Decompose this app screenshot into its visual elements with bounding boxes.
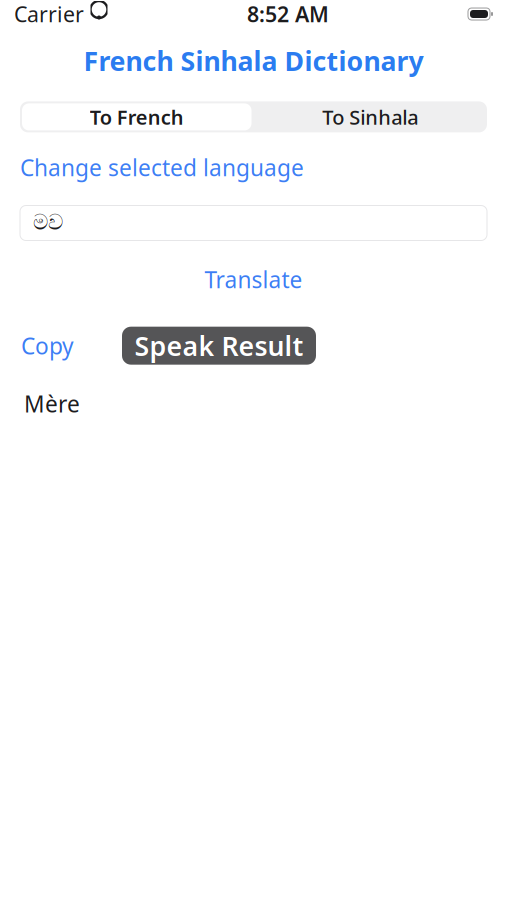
staticText: Carrier [14, 0, 84, 28]
staticText: Change selected language [20, 152, 304, 182]
staticText: To Sinhala [322, 104, 418, 130]
staticText: Mère [24, 389, 80, 419]
staticText: Speak Result [134, 328, 303, 363]
staticText: To French [90, 104, 184, 130]
staticText: Copy [21, 331, 74, 361]
button[interactable]: To Sinhala [253, 101, 487, 132]
button[interactable]: Translate [0, 261, 507, 298]
button[interactable]: To French [20, 101, 253, 132]
staticText: 8:52 AM [247, 0, 329, 28]
button[interactable]: Speak Result [122, 327, 316, 365]
button[interactable]: Copy [17, 325, 78, 367]
staticText: Translate [204, 264, 302, 295]
staticText: මව [33, 213, 63, 233]
staticText: French Sinhala Dictionary [83, 43, 423, 78]
button[interactable]: Change selected language [0, 150, 324, 184]
